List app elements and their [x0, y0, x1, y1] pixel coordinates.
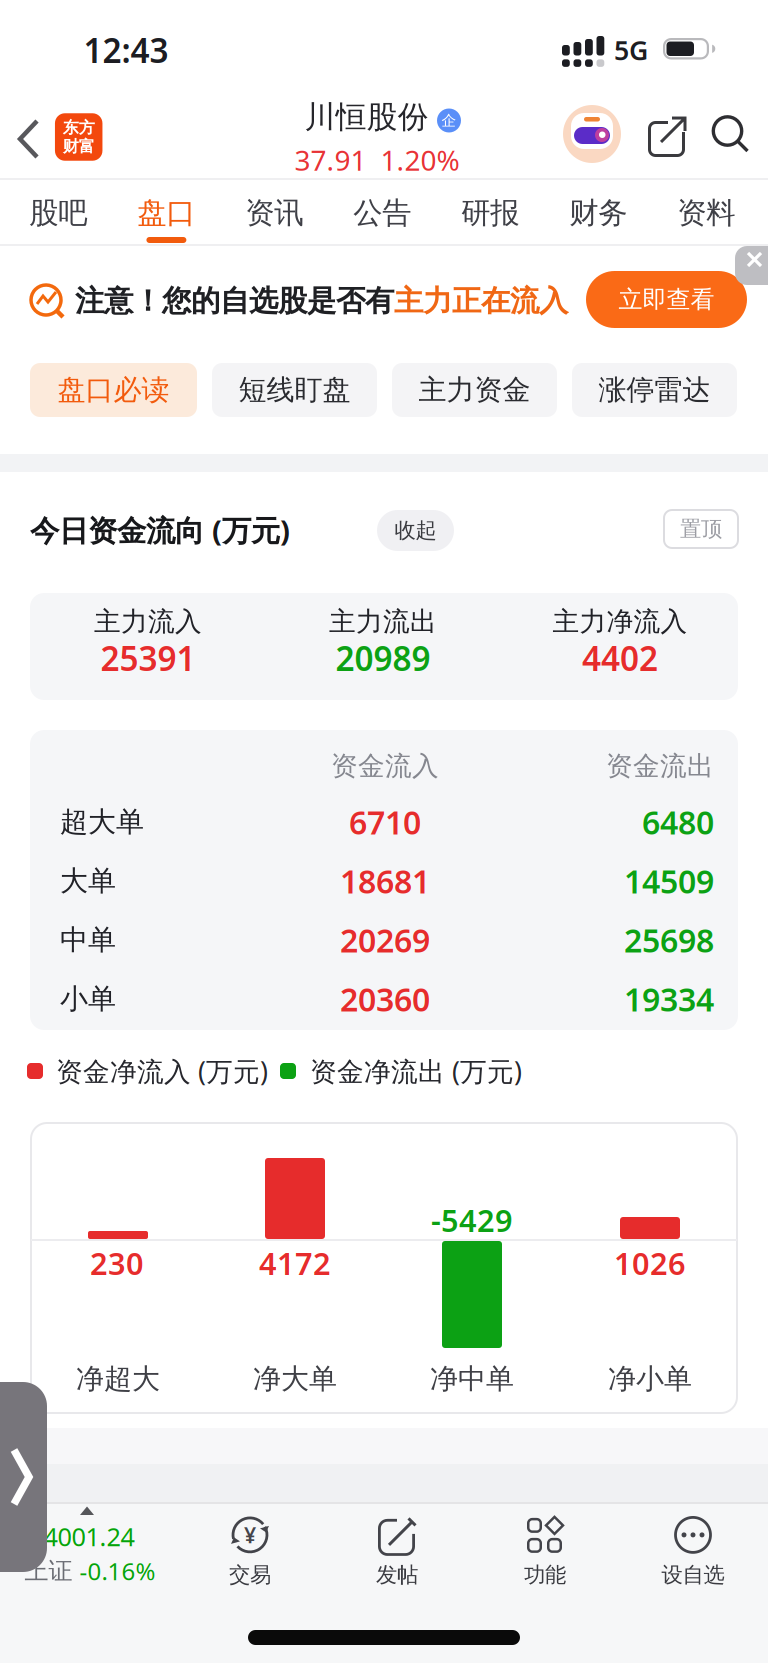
button[interactable]: 上证指数 [0, 1502, 176, 1614]
staticText: 主力流出 [329, 605, 437, 638]
staticText: 主力流入 [94, 605, 202, 638]
staticText: 资金流出 [606, 750, 714, 782]
staticText: 设自选 [661, 1562, 724, 1588]
staticText: -5429 [431, 1200, 513, 1240]
staticText: 12:43 [83, 28, 168, 72]
button[interactable]: 立即查看 [586, 271, 747, 328]
staticText: 20269 [340, 919, 430, 961]
staticText: 置顶 [680, 516, 722, 542]
staticText: 研报 [461, 195, 519, 231]
staticText: 25391 [100, 636, 195, 680]
staticText: 资金净流出 (万元) [310, 1053, 522, 1089]
staticText: 4402 [582, 636, 658, 680]
button[interactable]: 短线盯盘 [212, 363, 377, 417]
staticText: 主力正在流入 [394, 283, 568, 319]
button[interactable]: 公告 [332, 182, 432, 244]
staticText: 企 [441, 111, 456, 129]
staticText: 功能 [524, 1562, 566, 1588]
staticText: 230 [90, 1243, 144, 1283]
staticText: 净大单 [253, 1362, 337, 1396]
staticText: 18681 [340, 860, 430, 902]
staticText: 资金流入 [331, 750, 439, 782]
button[interactable]: ¥ [185, 1500, 315, 1602]
staticText: 14509 [624, 860, 714, 902]
staticText: 交易 [229, 1562, 271, 1588]
staticText: 25698 [624, 919, 714, 961]
staticText: 财富 [63, 136, 95, 156]
staticText: -0.16% [79, 1555, 155, 1587]
staticText: 立即查看 [618, 285, 714, 314]
button[interactable]: 资料 [656, 182, 756, 244]
staticText: 主力资金 [418, 373, 530, 407]
button[interactable]: 资讯 [224, 182, 324, 244]
staticText: 东方 [63, 118, 95, 137]
button[interactable]: 设自选 [628, 1500, 758, 1602]
staticText: 6710 [349, 801, 421, 843]
staticText: 20989 [335, 636, 430, 680]
staticText: 涨停雷达 [598, 373, 710, 407]
staticText: 注意！您的自选股是否有 [75, 283, 394, 319]
staticText: 盘口 [137, 195, 195, 231]
staticText: 收起 [394, 517, 436, 544]
button[interactable]: Expand [0, 1382, 47, 1572]
button[interactable]: Search [711, 115, 750, 154]
staticText: 川恒股份 [305, 98, 429, 136]
button[interactable]: Share [646, 113, 688, 157]
button[interactable]: Dismiss [735, 246, 768, 285]
staticText: 资料 [677, 195, 735, 231]
button[interactable]: 功能 [480, 1500, 610, 1602]
staticText: 净超大 [76, 1362, 160, 1396]
button[interactable]: 主力资金 [392, 363, 557, 417]
staticText: 大单 [60, 864, 116, 898]
button[interactable]: 涨停雷达 [572, 363, 737, 417]
staticText: 发帖 [376, 1562, 418, 1588]
staticText: 上证 [24, 1556, 72, 1586]
staticText: 财务 [569, 195, 627, 231]
staticText: 主力净流入 [552, 605, 687, 638]
staticText: 20360 [340, 978, 430, 1020]
button[interactable]: 股吧 [8, 182, 108, 244]
staticText: 净小单 [608, 1362, 692, 1396]
staticText: 4172 [259, 1243, 331, 1283]
button[interactable]: 盘口必读 [30, 363, 197, 417]
staticText: 5G [614, 32, 648, 68]
staticText: 净中单 [430, 1362, 514, 1396]
staticText: 中单 [60, 923, 116, 957]
staticText: 超大单 [60, 805, 144, 839]
button[interactable]: AI assistant [563, 105, 621, 163]
staticText: 6480 [642, 801, 714, 843]
staticText: 资讯 [245, 195, 303, 231]
staticText: 盘口必读 [57, 373, 169, 407]
staticText: 4001.24 [43, 1520, 134, 1553]
staticText: 今日资金流向 (万元) [30, 510, 290, 549]
button[interactable]: 财务 [548, 182, 648, 244]
staticText: 短线盯盘 [238, 373, 350, 407]
staticText: 股吧 [29, 195, 87, 231]
button[interactable]: 置顶 [663, 509, 739, 549]
button[interactable]: 东方财富 [55, 113, 102, 161]
button[interactable]: 研报 [440, 182, 540, 244]
button[interactable]: 盘口 [116, 182, 216, 244]
staticText: ¥ [244, 1521, 256, 1549]
staticText: 37.91 1.20% [294, 141, 459, 179]
button[interactable]: Back [7, 111, 51, 167]
button[interactable]: 收起 [377, 510, 454, 551]
staticText: 资金净流入 (万元) [56, 1053, 268, 1089]
staticText: 公告 [353, 195, 411, 231]
staticText: 小单 [60, 982, 116, 1016]
staticText: 19334 [624, 978, 714, 1020]
staticText: 1026 [614, 1243, 686, 1283]
button[interactable]: 发帖 [332, 1500, 462, 1602]
